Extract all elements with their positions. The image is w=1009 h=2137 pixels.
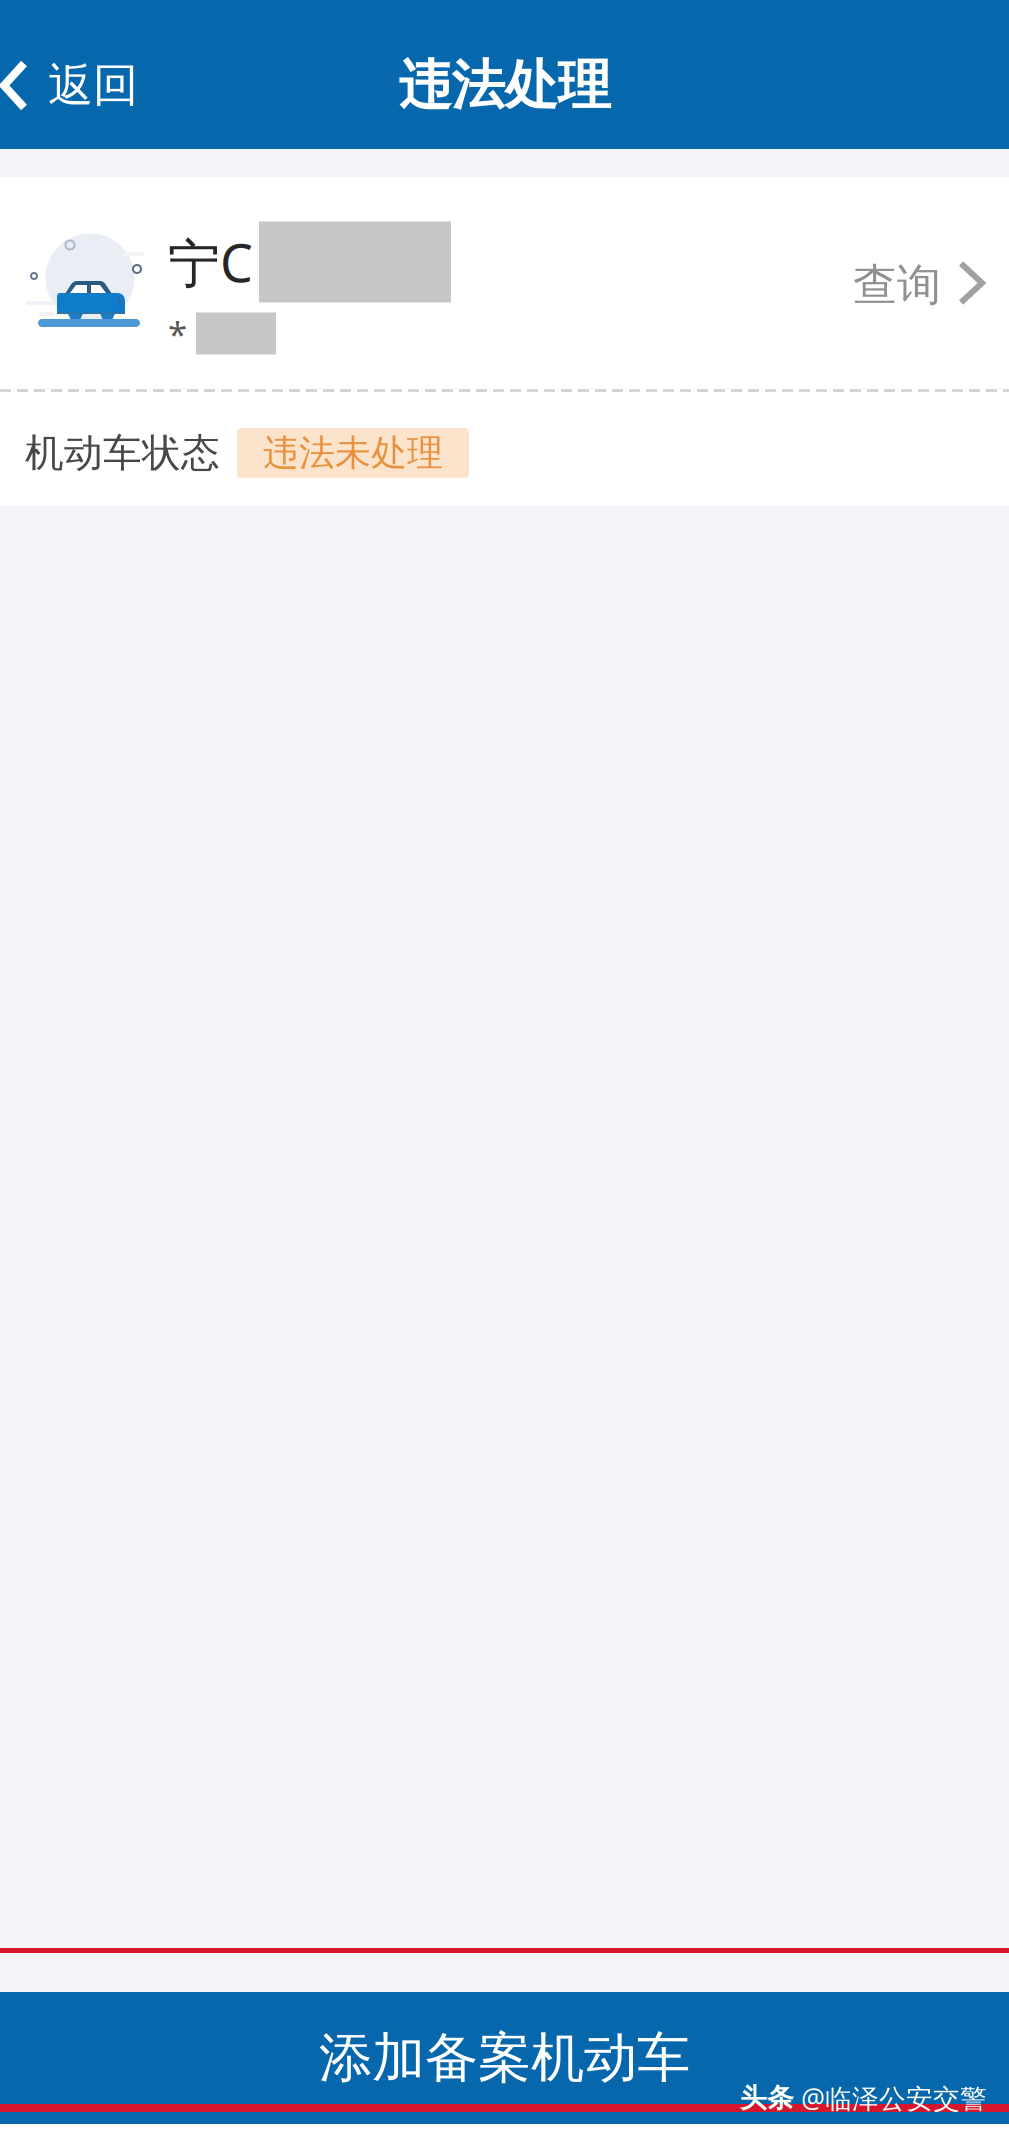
staticText: 返回 bbox=[48, 58, 138, 113]
button[interactable]: 返回 bbox=[0, 14, 162, 134]
button[interactable]: 宁C bbox=[0, 177, 1009, 389]
staticText: 头条 bbox=[740, 2082, 794, 2114]
staticText: 宁C bbox=[168, 227, 253, 297]
staticText: * bbox=[168, 310, 187, 356]
button[interactable]: 添加备案机动车 bbox=[0, 1992, 1009, 2104]
staticText: 违法处理 bbox=[398, 53, 610, 118]
staticText: 机动车状态 bbox=[25, 429, 220, 477]
staticText: 查询 bbox=[853, 258, 941, 312]
staticText: @临泽公安交警 bbox=[801, 2080, 987, 2116]
staticText: 添加备案机动车 bbox=[319, 2025, 690, 2091]
staticText: 违法未处理 bbox=[263, 431, 443, 475]
